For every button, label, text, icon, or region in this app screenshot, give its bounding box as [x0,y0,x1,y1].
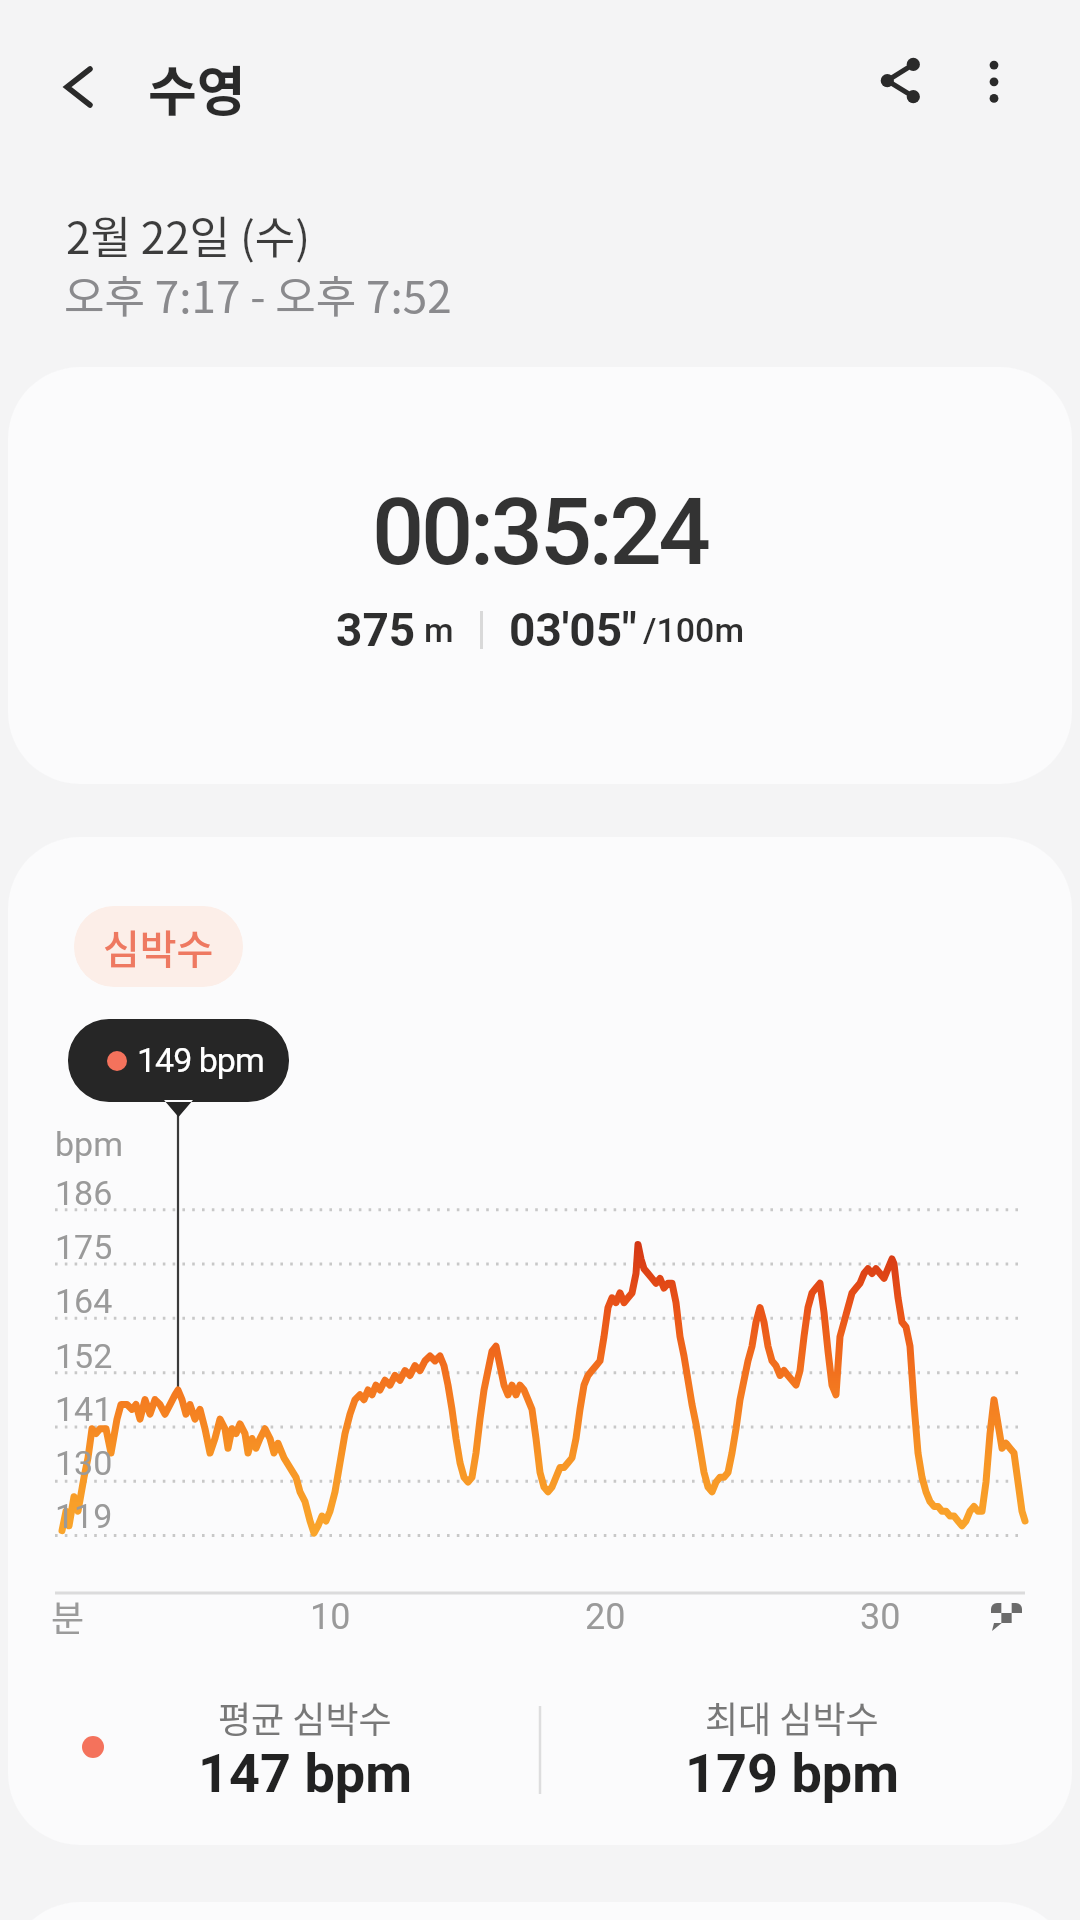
staticText: 오후 7:17 - 오후 7:52 [64,262,452,326]
staticText: 179 bpm [685,1742,899,1805]
staticText: 수영 [148,50,246,127]
staticText: 2월 22일 (수) [66,203,311,267]
staticText: 130 [55,1443,113,1483]
staticText: 03'05" [509,603,637,657]
staticText: 164 [55,1281,113,1321]
staticText: 분 [51,1590,85,1642]
staticText: m [424,610,454,650]
staticText: 375 [336,603,416,657]
staticText: 186 [55,1173,113,1213]
staticText: 119 [55,1496,113,1536]
staticText: 30 [860,1596,901,1638]
button[interactable] [949,36,1039,126]
staticText: 00:35:24 [372,479,708,587]
staticText: /100m [643,610,745,650]
staticText: 20 [585,1596,626,1638]
staticText: 147 bpm [198,1742,412,1805]
staticText: 10 [310,1596,351,1638]
staticText: 최대 심박수 [705,1691,879,1743]
button[interactable]: 심박수 [74,906,243,987]
button[interactable] [40,52,130,142]
button[interactable] [855,36,945,126]
staticText: 141 [55,1389,113,1429]
staticText: bpm [55,1124,123,1164]
staticText: 175 [55,1227,113,1267]
staticText: 심박수 [103,918,214,976]
staticText: 152 [55,1336,113,1376]
staticText: 149 bpm [137,1040,264,1080]
staticText: 평균 심박수 [218,1691,392,1743]
